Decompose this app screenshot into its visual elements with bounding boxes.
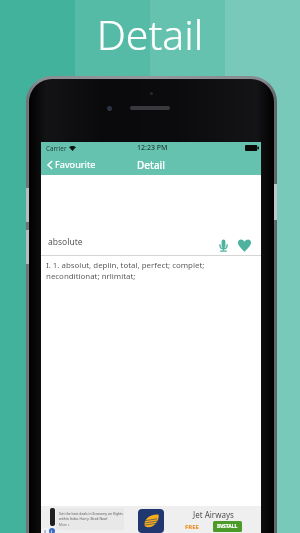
staticText: INSTALL — [217, 523, 238, 530]
staticText: Favourite — [55, 158, 96, 171]
staticText: More » — [59, 523, 70, 527]
button[interactable]: Voice search — [215, 231, 231, 253]
button[interactable]: Favourite — [235, 231, 253, 253]
staticText: i — [51, 529, 53, 533]
staticText: I. 1. absolut, deplin, total, perfect; c… — [46, 260, 205, 282]
staticText: Carrier — [46, 144, 67, 153]
button[interactable]: Get the best deals in Economy on flights… — [41, 506, 261, 533]
staticText: 12:23 PM — [137, 143, 168, 153]
staticText: Jet Airways — [193, 509, 234, 520]
staticText: FREE — [185, 523, 199, 531]
staticText: x — [44, 528, 47, 533]
staticText: absolute — [48, 236, 83, 248]
staticText: Detail — [137, 158, 165, 172]
button[interactable]: INSTALL — [213, 521, 242, 532]
staticText: Get the best deals in Economy on flights… — [59, 511, 123, 521]
button[interactable]: Favourite — [41, 154, 102, 175]
staticText: Detail — [0, 6, 300, 62]
